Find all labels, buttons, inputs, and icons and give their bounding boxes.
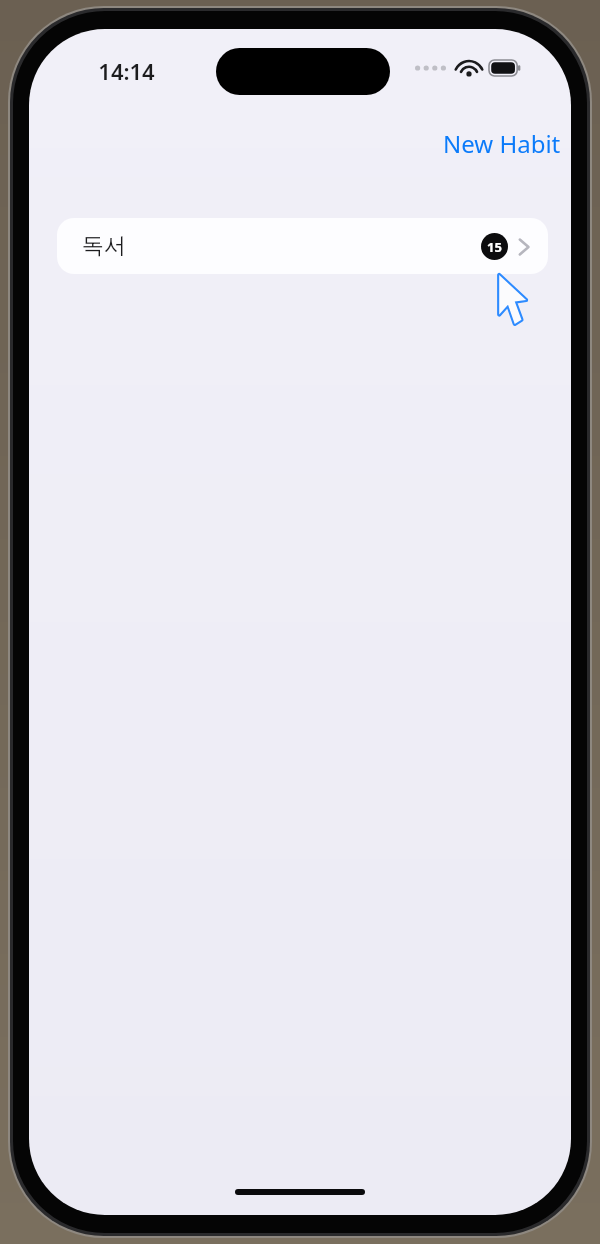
other: Open habit details	[517, 236, 531, 258]
button[interactable]: New Habit	[433, 121, 571, 166]
staticText: 독서	[82, 232, 126, 260]
staticText: 14:14	[98, 56, 155, 86]
button[interactable]: 독서	[57, 218, 548, 274]
staticText: 15	[487, 238, 502, 256]
staticText: New Habit	[443, 127, 561, 160]
